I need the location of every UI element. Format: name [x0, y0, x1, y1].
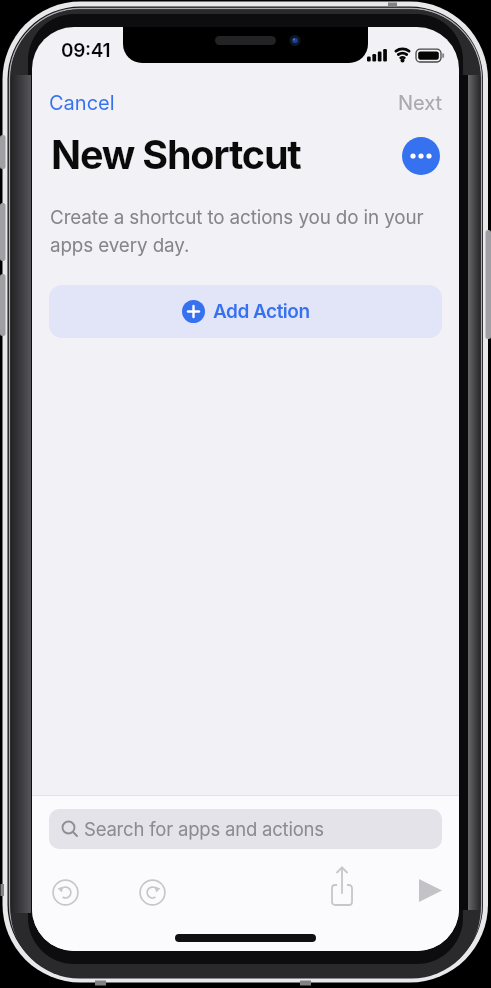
staticText: 09:41 [61, 39, 111, 62]
staticText: Create a shortcut to actions you do in y… [50, 206, 424, 256]
button[interactable]: Add Action [49, 285, 442, 338]
button[interactable]: Next [398, 91, 443, 115]
button[interactable]: Cancel [49, 91, 115, 115]
button[interactable] [328, 863, 356, 907]
button[interactable] [49, 876, 82, 909]
button[interactable] [136, 876, 169, 909]
button[interactable] [402, 137, 440, 175]
staticText: Add Action [213, 300, 310, 323]
staticText: Search for apps and actions [84, 818, 324, 840]
staticText: Next [398, 91, 443, 115]
button[interactable]: Search for apps and actions [49, 809, 442, 849]
staticText: New Shortcut [51, 131, 301, 179]
button[interactable] [413, 873, 447, 907]
